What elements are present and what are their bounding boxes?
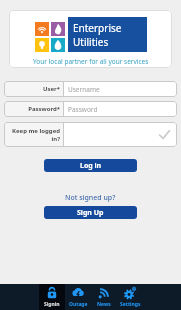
staticText: Settings (120, 301, 141, 308)
staticText: Keep me logged in? (12, 127, 60, 143)
staticText: Signin (44, 301, 60, 308)
staticText: Sign Up (77, 208, 104, 218)
staticText: News (97, 301, 111, 308)
staticText: Password* (28, 105, 60, 113)
button[interactable]: Outage (65, 284, 91, 310)
staticText: Outage (69, 301, 88, 308)
button[interactable]: Sign Up (44, 206, 137, 219)
staticText: Your local partner for all your services (33, 57, 149, 66)
staticText: Utilities (73, 35, 109, 49)
staticText: User* (42, 85, 60, 93)
button[interactable]: Signin (39, 284, 65, 310)
staticText: Not signed up? (65, 193, 116, 203)
staticText: Password (68, 105, 98, 114)
button[interactable]: Keep me logged in? (4, 122, 177, 147)
staticText: Enterprise (73, 21, 122, 35)
button[interactable]: Settings (117, 284, 143, 310)
staticText: Username (68, 85, 100, 94)
button[interactable]: Not signed up? (65, 193, 116, 203)
button[interactable]: Password* (4, 101, 177, 117)
staticText: Log in (80, 161, 102, 171)
button[interactable]: News (91, 284, 117, 310)
button[interactable]: Log in (44, 159, 137, 172)
button[interactable]: User* (4, 81, 177, 97)
